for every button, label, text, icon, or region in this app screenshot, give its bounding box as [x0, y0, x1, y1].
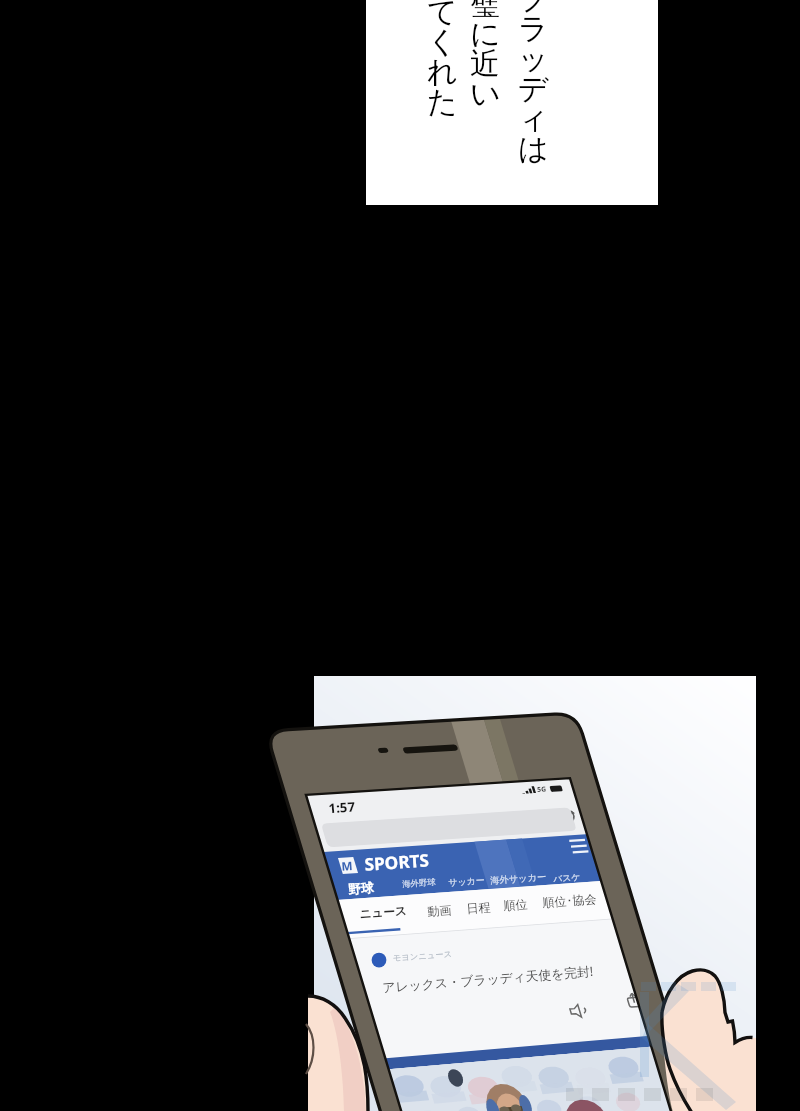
staticText: 璧: [470, 0, 500, 23]
button[interactable]: 日程: [457, 895, 500, 928]
button[interactable]: 順位: [495, 892, 539, 925]
button[interactable]: バスケ: [544, 863, 584, 886]
staticText: て: [427, 0, 458, 31]
staticText: ブ: [518, 0, 549, 18]
staticText: デ: [518, 70, 549, 108]
button[interactable]: 海外サッカー: [481, 866, 549, 891]
button[interactable]: Share: [623, 991, 646, 1012]
button[interactable]: Address bar: [318, 803, 581, 849]
button[interactable]: Reload: [555, 807, 582, 828]
button[interactable]: 海外野球: [393, 873, 440, 897]
staticText: に: [470, 15, 501, 53]
button[interactable]: 動画: [418, 898, 461, 931]
staticText: 近: [470, 45, 500, 83]
button[interactable]: 順位･協会: [535, 887, 603, 922]
staticText: ィ: [518, 100, 549, 138]
staticText: ラ: [518, 10, 549, 48]
button[interactable]: Menu: [564, 835, 594, 858]
button[interactable]: サッカー: [438, 870, 484, 894]
button[interactable]: アレックス・ブラッディ天使を完封!: [363, 933, 599, 1003]
button[interactable]: Listen: [566, 1002, 592, 1023]
staticText: た: [427, 83, 458, 121]
button[interactable]: 野球: [338, 877, 384, 901]
button[interactable]: Article photo: [369, 1031, 674, 1111]
staticText: い: [470, 75, 501, 113]
staticText: れ: [427, 53, 458, 91]
button[interactable]: M SPORTS: [337, 850, 432, 876]
staticText: ッ: [518, 40, 549, 78]
staticText: く: [427, 23, 458, 61]
button[interactable]: ニュース: [348, 901, 412, 936]
staticText: は: [518, 130, 549, 168]
